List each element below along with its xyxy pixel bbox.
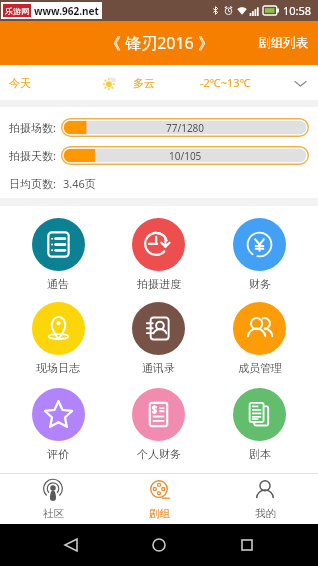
button[interactable]: 剧组 xyxy=(106,474,212,524)
staticText: 3.46页 xyxy=(63,176,96,191)
staticText: 评价 xyxy=(47,447,69,460)
button[interactable]: 财务 xyxy=(209,218,310,290)
staticText: 通讯录 xyxy=(142,361,175,374)
staticText: 财务 xyxy=(249,277,271,290)
button[interactable]: 拍摄进度 xyxy=(108,218,209,290)
staticText: 剧组列表 xyxy=(258,35,308,51)
staticText: 今天 xyxy=(9,76,31,90)
button[interactable]: 个人财务 xyxy=(108,388,209,460)
button[interactable]: 剧本 xyxy=(209,388,310,460)
staticText: 成员管理 xyxy=(238,361,282,374)
staticText: 日均页数: xyxy=(9,176,56,191)
button[interactable]: 评价 xyxy=(8,388,108,460)
staticText: 个人财务 xyxy=(137,447,181,460)
button[interactable]: 社区 xyxy=(0,474,106,524)
staticText: 10:58 xyxy=(283,3,312,18)
staticText: 社区 xyxy=(43,507,64,520)
button[interactable]: 成员管理 xyxy=(209,302,310,374)
button[interactable]: 我的 xyxy=(212,474,318,524)
staticText: 拍摄进度 xyxy=(137,277,181,290)
staticText: 多云 xyxy=(133,76,155,90)
button[interactable]: 剧组列表 xyxy=(248,25,318,61)
button[interactable]: Recents xyxy=(234,532,260,558)
staticText: 剧本 xyxy=(249,447,271,460)
staticText: 77/1280 xyxy=(166,121,205,135)
button[interactable]: 通告 xyxy=(8,218,108,290)
button[interactable]: 现场日志 xyxy=(8,302,108,374)
staticText: 乐游网 xyxy=(5,6,29,16)
staticText: -2℃~13℃ xyxy=(200,75,251,90)
staticText: 剧组 xyxy=(149,507,170,520)
staticText: 拍摄天数: xyxy=(9,148,56,163)
staticText: 拍摄场数: xyxy=(9,120,56,135)
button[interactable]: Expand xyxy=(287,70,313,96)
staticText: 《 锋刃2016 》 xyxy=(105,32,214,54)
staticText: 10/105 xyxy=(169,149,202,163)
staticText: 现场日志 xyxy=(36,361,80,374)
button[interactable]: Home xyxy=(146,532,172,558)
staticText: 我的 xyxy=(255,507,276,520)
button[interactable]: 通讯录 xyxy=(108,302,209,374)
staticText: 通告 xyxy=(47,277,69,290)
staticText: www.962.net xyxy=(34,4,99,18)
button[interactable]: Back xyxy=(58,532,84,558)
